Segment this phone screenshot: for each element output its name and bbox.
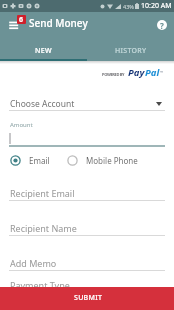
- staticText: Choose Account: [10, 98, 75, 110]
- staticText: SUBMIT: [74, 293, 103, 303]
- button[interactable]: Open navigation menu, 6 notifications: [0, 12, 28, 38]
- button[interactable]: Payment Type: [10, 279, 166, 291]
- button[interactable]: Recipient Email: [9, 186, 165, 201]
- staticText: POWERED BY: [102, 72, 125, 77]
- button[interactable]: Mobile Phone: [67, 154, 138, 167]
- button[interactable]: HISTORY: [87, 38, 174, 61]
- staticText: Send Money: [29, 16, 88, 30]
- staticText: Email: [29, 155, 50, 166]
- button[interactable]: NEW: [0, 38, 87, 61]
- staticText: NEW: [35, 46, 52, 56]
- staticText: Add Memo: [10, 257, 57, 269]
- staticText: Payment Type: [10, 279, 70, 291]
- staticText: Recipient Email: [10, 187, 75, 199]
- button[interactable]: Email: [10, 154, 50, 167]
- button[interactable]: Choose Account: [9, 97, 165, 111]
- button[interactable]: Recipient Name: [9, 221, 165, 236]
- staticText: HISTORY: [115, 46, 147, 56]
- button[interactable]: Add Memo: [9, 256, 165, 271]
- staticText: ?: [160, 20, 164, 30]
- button[interactable]: SUBMIT: [0, 287, 174, 310]
- button[interactable]: Amount: [9, 121, 165, 147]
- staticText: ™: [160, 70, 164, 75]
- staticText: 43%: [123, 3, 134, 10]
- staticText: Amount: [10, 121, 33, 129]
- staticText: Pal: [145, 66, 160, 79]
- staticText: Recipient Name: [10, 222, 77, 234]
- staticText: Pay: [128, 66, 145, 79]
- staticText: 10:20 AM: [141, 1, 172, 11]
- button[interactable]: Help: [152, 15, 172, 35]
- staticText: 6: [19, 15, 24, 24]
- staticText: Mobile Phone: [86, 155, 138, 166]
